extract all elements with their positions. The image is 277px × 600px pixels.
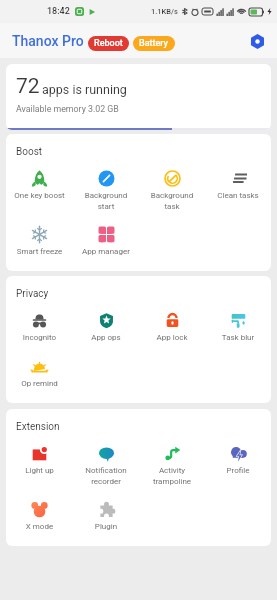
staticText: Available memory 3.02 GB [16,104,119,114]
button[interactable]: App ops [73,302,139,348]
staticText: Profile [207,466,269,475]
staticText: 72 [16,74,40,99]
staticText: Smart freeze [8,247,71,256]
staticText: Privacy [16,288,49,300]
staticText: App ops [75,333,137,342]
staticText: App lock [141,333,203,342]
button[interactable]: Battery [133,36,175,51]
staticText: Clean tasks [207,191,269,200]
button[interactable]: App lock [139,302,205,348]
button[interactable]: Smart freeze [6,216,73,262]
staticText: X mode [8,522,71,531]
staticText: 18:42 [47,6,70,17]
button[interactable]: Incognito [6,302,73,348]
staticText: Boost [16,146,43,158]
staticText: Incognito [8,333,71,342]
button[interactable]: Notification recorder [73,435,139,491]
staticText: Op remind [8,379,71,388]
staticText: Background task [141,191,203,211]
staticText: Notification recorder [75,466,137,486]
staticText: Light up [8,466,71,475]
button[interactable]: One key boost [6,160,73,206]
staticText: One key boost [8,191,71,200]
staticText: Plugin [75,522,137,531]
button[interactable]: Clean tasks [205,160,271,206]
button[interactable]: App manager [73,216,139,262]
button[interactable]: Reboot [88,36,129,51]
button[interactable]: Profile [205,435,271,481]
button[interactable]: Task blur [205,302,271,348]
staticText: Battery [139,38,169,49]
button[interactable]: Activity trampoline [139,435,205,491]
button[interactable]: Settings [245,29,269,53]
staticText: 1.1KB/s [151,7,178,16]
button[interactable]: Op remind [6,348,73,394]
staticText: Background start [75,191,137,211]
button[interactable]: Background start [73,160,139,216]
staticText: Extension [16,421,60,433]
button[interactable]: Light up [6,435,73,481]
staticText: Thanox Pro [12,33,84,49]
button[interactable]: Plugin [73,491,139,537]
staticText: App manager [75,247,137,256]
staticText: Activity trampoline [141,466,203,486]
staticText: Reboot [94,38,123,49]
button[interactable]: Background task [139,160,205,216]
button[interactable]: X mode [6,491,73,537]
staticText: apps is running [42,82,127,97]
staticText: Task blur [207,333,269,342]
